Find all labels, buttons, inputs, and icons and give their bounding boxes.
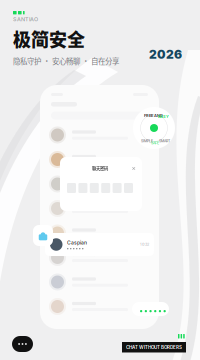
staticText: 极简安全 [13,25,85,52]
button[interactable]: Chat [12,336,33,352]
staticText: Caspian [67,240,87,246]
button[interactable]: CHAT WITHOUT BORDERS [122,342,186,352]
staticText: SANTIAO [13,16,38,22]
button[interactable]: Close [130,164,137,171]
staticText: SIMPLE [141,139,153,143]
button[interactable]: Caspian [45,233,154,256]
staticText: EASY [158,114,169,119]
staticText: 聊天密码 [92,165,108,171]
staticText: CHAT WITHOUT BORDERS [126,344,182,350]
staticText: 2026 [149,47,182,61]
staticText: 隐私守护 · 安心畅聊 · 自在分享 [13,56,119,66]
staticText: FREE AND [144,113,163,118]
staticText: × [131,163,135,172]
staticText: SAFE [151,141,159,145]
staticText: SMART [159,139,170,143]
staticText: 10:32 [140,242,149,247]
